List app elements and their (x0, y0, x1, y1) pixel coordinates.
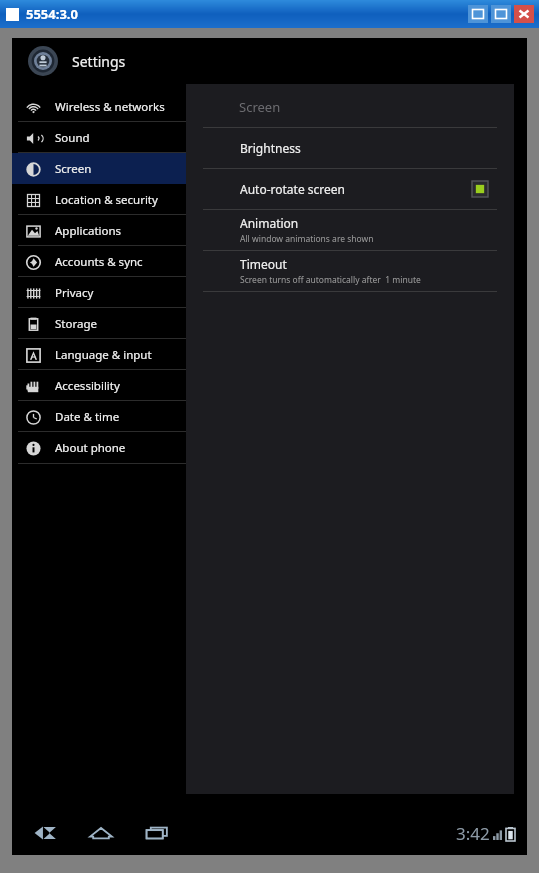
staticText: Brightness (240, 140, 301, 156)
staticText: Accessibility (55, 378, 120, 394)
button[interactable]: Screen (12, 153, 186, 184)
button[interactable]: Animation (186, 210, 514, 250)
staticText: Storage (55, 316, 97, 332)
staticText: Screen (239, 98, 281, 116)
button[interactable] (468, 5, 488, 23)
staticText: Privacy (55, 285, 94, 301)
staticText: Wireless & networks (55, 99, 165, 115)
button[interactable]: Home (84, 818, 118, 848)
button[interactable]: Date & time (12, 401, 186, 432)
button[interactable]: Sound (12, 122, 186, 153)
staticText: Animation (240, 215, 299, 231)
staticText: Screen (55, 161, 92, 177)
staticText: Date & time (55, 409, 120, 425)
button[interactable]: Auto-rotate screen toggle (472, 181, 488, 197)
button[interactable]: Recent apps (140, 818, 174, 848)
staticText: Sound (55, 130, 90, 146)
staticText: Settings (72, 52, 126, 71)
button[interactable]: Privacy (12, 277, 186, 308)
button[interactable]: Storage (12, 308, 186, 339)
staticText: 5554:3.0 (26, 5, 78, 23)
button[interactable]: Auto-rotate screen (186, 169, 514, 209)
button[interactable] (514, 5, 534, 23)
button[interactable]: Accessibility (12, 370, 186, 401)
button[interactable] (491, 5, 511, 23)
button[interactable]: Accounts & sync (12, 246, 186, 277)
staticText: Applications (55, 223, 122, 239)
staticText: Location & security (55, 192, 158, 208)
button[interactable]: Back (28, 818, 62, 848)
staticText: Timeout (240, 256, 287, 272)
staticText: Screen turns off automatically after 1 m… (240, 274, 421, 286)
button[interactable]: Wireless & networks (12, 91, 186, 122)
button[interactable]: Brightness (186, 128, 514, 168)
staticText: Accounts & sync (55, 254, 143, 270)
button[interactable]: About phone (12, 432, 186, 463)
button[interactable]: Timeout (186, 251, 514, 291)
staticText: All window animations are shown (240, 233, 374, 245)
button[interactable]: Applications (12, 215, 186, 246)
button[interactable]: Language & input (12, 339, 186, 370)
staticText: Auto-rotate screen (240, 181, 345, 197)
staticText: About phone (55, 440, 126, 456)
staticText: 3:42 (456, 822, 490, 845)
staticText: Language & input (55, 347, 152, 363)
button[interactable]: Location & security (12, 184, 186, 215)
